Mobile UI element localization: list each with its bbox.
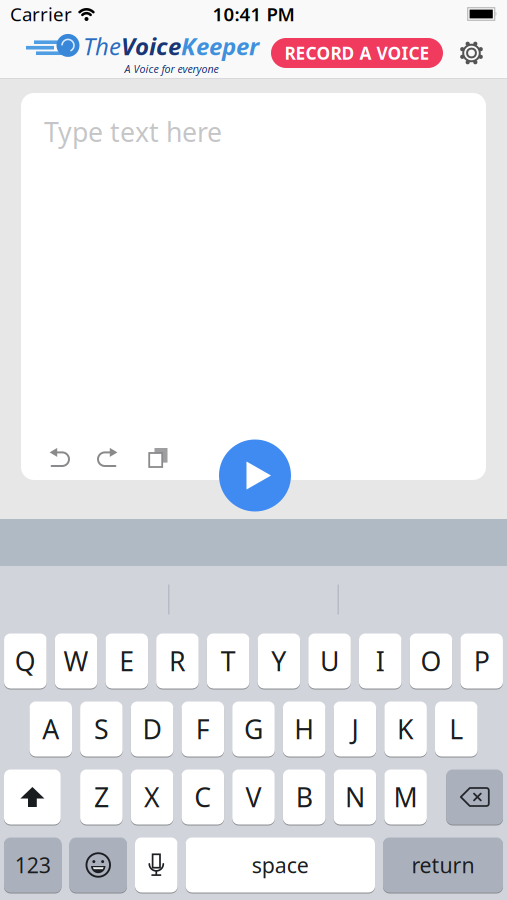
button[interactable]: Emoji	[69, 837, 127, 892]
button[interactable]: Q	[4, 633, 47, 688]
button[interactable]: Dictate	[135, 837, 178, 892]
staticText: B	[296, 779, 313, 815]
button[interactable]: N	[334, 769, 376, 824]
staticText: G	[244, 711, 263, 747]
button[interactable]: X	[131, 769, 173, 824]
staticText: Type text here	[44, 114, 222, 149]
staticText: N	[345, 779, 365, 815]
staticText: K	[397, 711, 414, 747]
button[interactable]: Undo	[48, 447, 69, 468]
button[interactable]: Copy	[148, 447, 169, 468]
staticText: O	[420, 643, 441, 679]
button[interactable]: T	[207, 633, 249, 688]
staticText: The	[83, 30, 121, 62]
button[interactable]: J	[334, 701, 376, 756]
staticText: Q	[15, 643, 36, 679]
staticText: A	[42, 711, 59, 747]
button[interactable]: Settings	[443, 41, 507, 64]
button[interactable]: 123	[4, 837, 61, 892]
button[interactable]: Y	[257, 633, 300, 688]
button[interactable]: L	[435, 701, 478, 756]
staticText: space	[252, 851, 309, 879]
button[interactable]: H	[283, 701, 325, 756]
staticText: E	[119, 643, 134, 679]
staticText: Voice	[121, 30, 181, 62]
staticText: I	[376, 643, 385, 679]
button[interactable]: U	[308, 633, 351, 688]
button[interactable]: P	[460, 633, 503, 688]
staticText: T	[221, 643, 236, 679]
staticText: Z	[94, 779, 109, 815]
button[interactable]: V	[232, 769, 275, 824]
staticText: U	[320, 643, 339, 679]
staticText: A Voice for everyone	[124, 62, 218, 76]
button[interactable]: Redo	[98, 447, 119, 468]
button[interactable]: M	[384, 769, 427, 824]
staticText: S	[94, 711, 109, 747]
staticText: F	[196, 711, 210, 747]
button[interactable]: D	[131, 701, 173, 756]
button[interactable]: space	[186, 837, 375, 892]
staticText: X	[144, 779, 160, 815]
button[interactable]: Delete	[446, 769, 503, 824]
staticText: RECORD A VOICE	[284, 41, 429, 64]
staticText: C	[194, 779, 211, 815]
button[interactable]: Z	[80, 769, 123, 824]
staticText: W	[63, 643, 88, 679]
button[interactable]: E	[105, 633, 148, 688]
button[interactable]: Shift	[4, 769, 61, 824]
button[interactable]: O	[410, 633, 452, 688]
button[interactable]: C	[181, 769, 224, 824]
button[interactable]: RECORD A VOICE	[271, 38, 443, 68]
staticText: R	[169, 643, 186, 679]
button[interactable]: I	[359, 633, 401, 688]
button[interactable]: TheVoiceKeeper	[26, 30, 259, 76]
staticText: H	[294, 711, 314, 747]
button[interactable]: B	[283, 769, 325, 824]
staticText: J	[351, 711, 358, 747]
staticText: D	[143, 711, 162, 747]
staticText: V	[245, 779, 261, 815]
staticText: P	[474, 643, 490, 679]
button[interactable]: A	[29, 701, 72, 756]
button[interactable]: K	[384, 701, 427, 756]
button[interactable]: Play	[219, 439, 291, 511]
staticText: 10:41 PM	[212, 2, 294, 26]
staticText: 123	[15, 851, 51, 879]
button[interactable]: G	[232, 701, 275, 756]
staticText: L	[449, 711, 463, 747]
button[interactable]: S	[80, 701, 123, 756]
staticText: Carrier	[10, 2, 72, 26]
staticText: Keeper	[181, 30, 259, 62]
staticText: return	[411, 851, 474, 879]
button[interactable]: R	[156, 633, 199, 688]
button[interactable]: return	[383, 837, 503, 892]
staticText: M	[394, 779, 418, 815]
staticText: Y	[271, 643, 286, 679]
button[interactable]: F	[181, 701, 224, 756]
button[interactable]: W	[55, 633, 97, 688]
